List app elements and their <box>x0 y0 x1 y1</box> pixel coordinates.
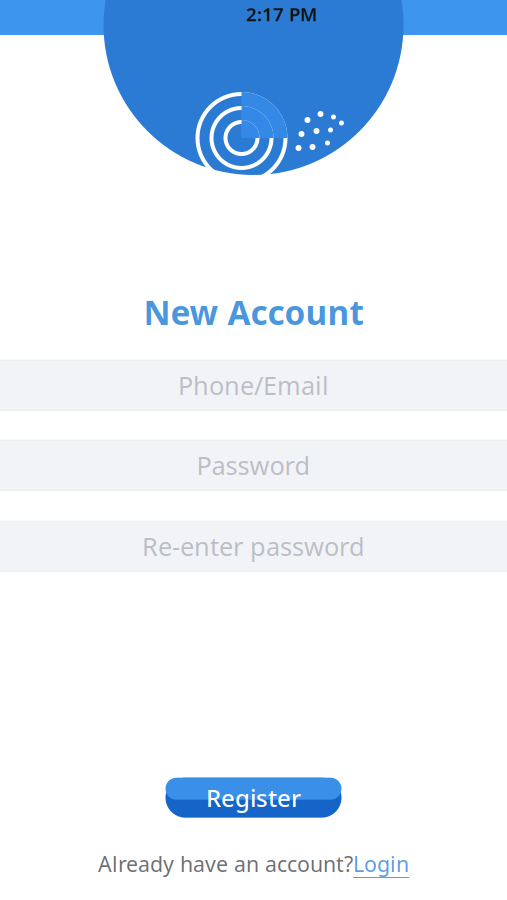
staticText: Register <box>206 782 301 814</box>
button[interactable]: Register <box>165 778 341 818</box>
button[interactable]: Already have an account? <box>98 850 409 878</box>
staticText: Password <box>196 448 310 482</box>
staticText: Phone/Email <box>178 368 329 402</box>
staticText: New Account <box>143 290 363 334</box>
staticText: 2:17 PM <box>246 2 317 26</box>
staticText: Re-enter password <box>142 529 365 563</box>
staticText: Already have an account? <box>98 850 353 878</box>
staticText: Login <box>353 850 409 878</box>
